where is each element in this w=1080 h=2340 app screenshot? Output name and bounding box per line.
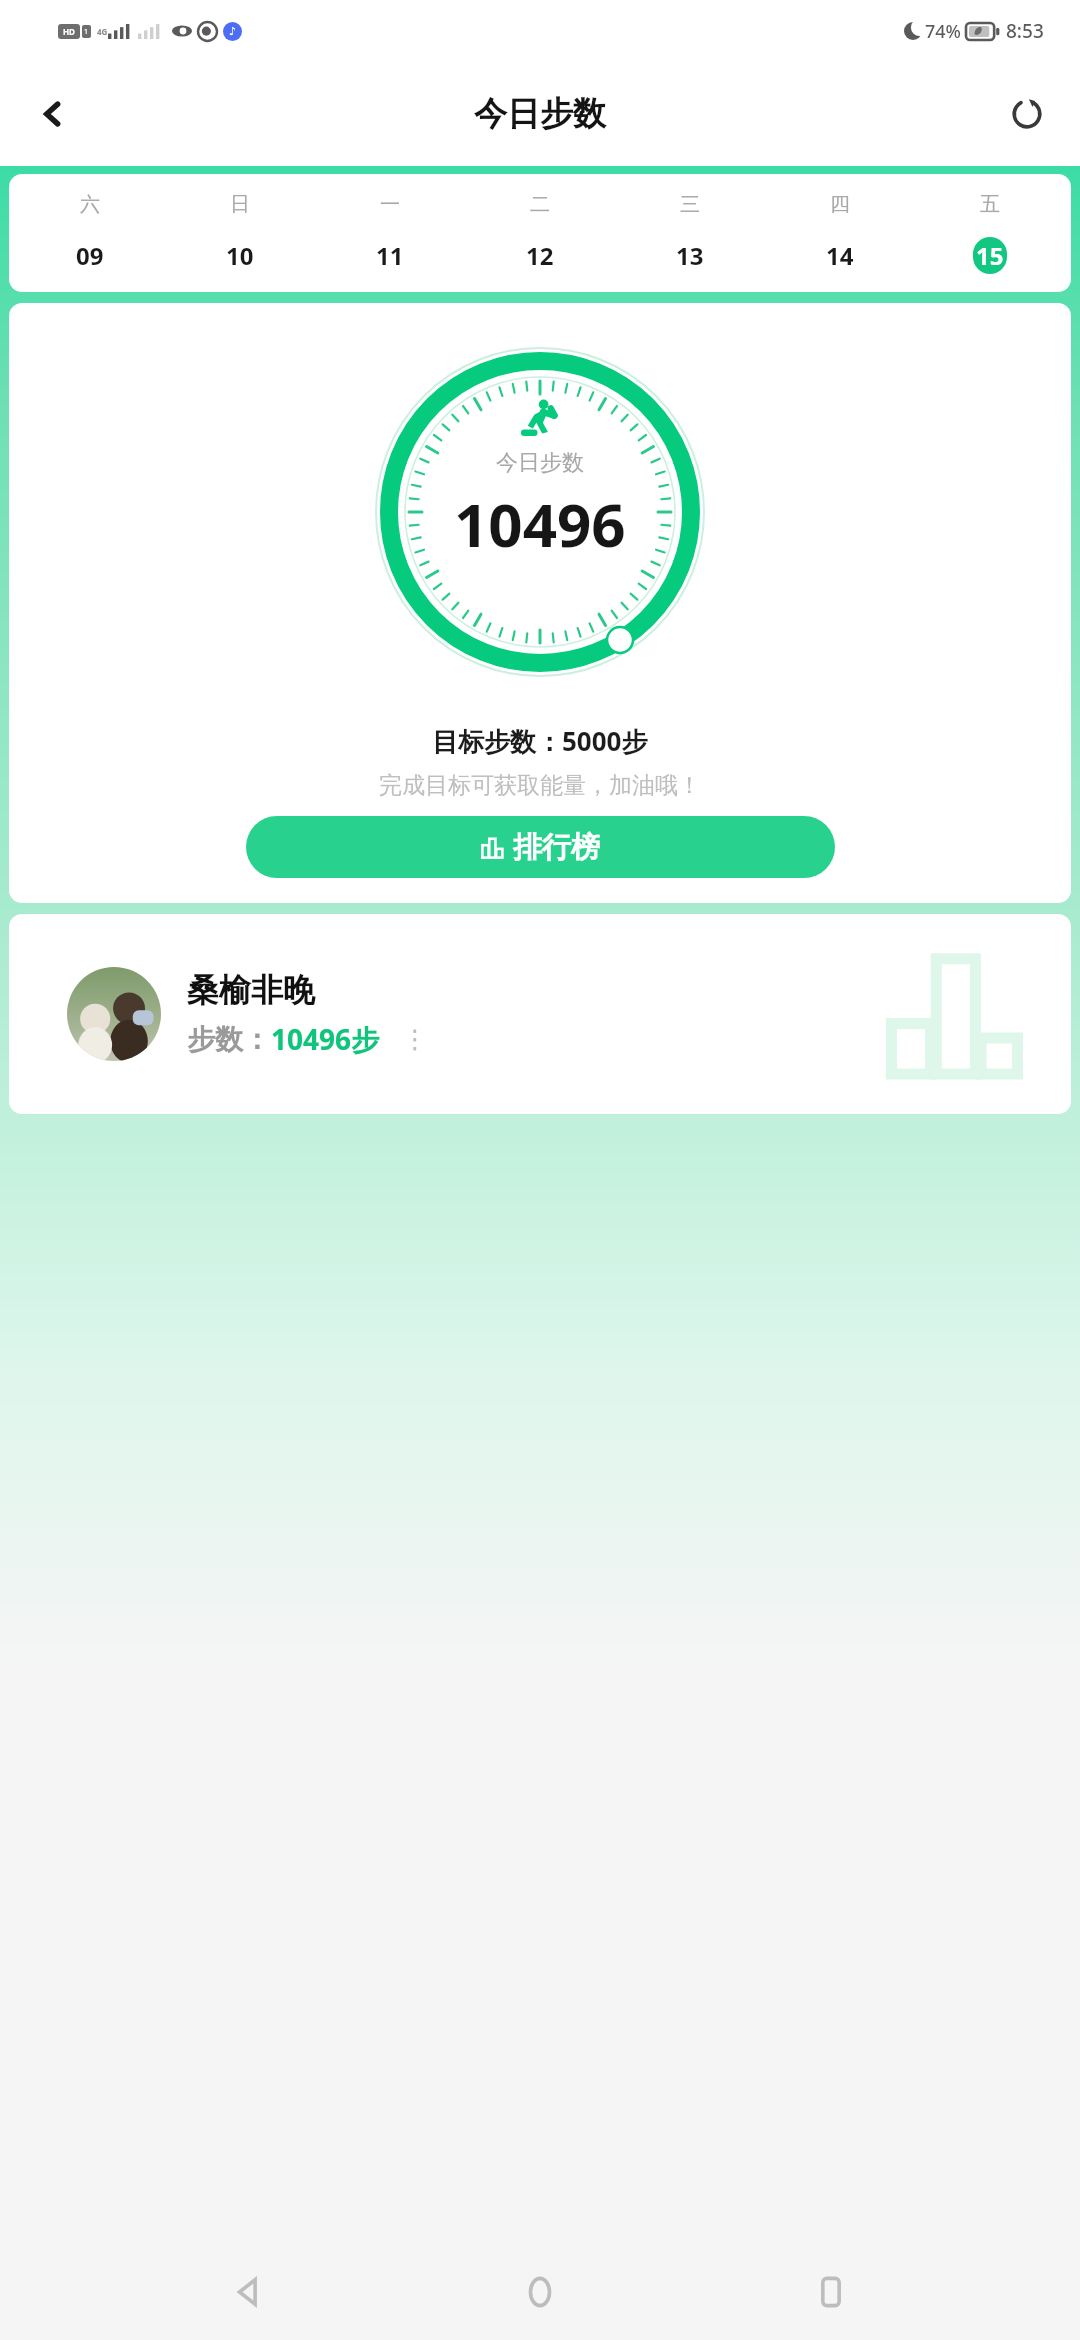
staticText: 桑榆非晚 [187,970,315,1010]
staticText: 六 [80,192,100,217]
button[interactable]: 13 [673,237,707,274]
staticText: 完成目标可获取能量，加油哦！ [379,771,701,800]
staticText: 今日步数 [496,449,584,477]
staticText: 日 [230,192,250,217]
staticText: 今日步数 [474,93,606,135]
staticText: 步数： [187,1022,271,1057]
staticText: 11 [376,239,404,272]
button[interactable]: 桑榆非晚 [9,914,1071,1114]
button[interactable]: 14 [823,237,857,274]
staticText: 一 [380,192,400,217]
staticText: 三 [680,192,700,217]
staticText: HD [63,26,75,37]
button[interactable]: Back [207,2250,291,2334]
staticText: 二 [530,192,550,217]
staticText: 10496步 [271,1020,380,1058]
button[interactable]: 排行榜 [246,816,835,878]
button[interactable]: 12 [523,237,557,274]
staticText: 1 [84,27,89,37]
staticText: 8:53 [1006,18,1044,44]
button[interactable]: 09 [73,237,107,274]
button[interactable]: Back [22,83,84,145]
button[interactable]: Refresh [996,83,1058,145]
staticText: ⋮ [402,1024,428,1054]
staticText: 目标步数：5000步 [432,723,648,759]
staticText: 74% [925,19,961,44]
button[interactable]: 15 [973,237,1007,274]
staticText: 五 [980,192,1000,217]
staticText: 排行榜 [513,829,600,866]
staticText: 13 [676,239,704,272]
staticText: 10 [226,239,254,272]
button[interactable]: Recents [789,2250,873,2334]
staticText: ♪ [229,25,237,38]
button[interactable]: Home [498,2250,582,2334]
staticText: 14 [826,239,854,272]
staticText: 四 [830,192,850,217]
staticText: 10496 [454,483,626,565]
button[interactable]: 10 [223,237,257,274]
button[interactable]: 11 [373,237,407,274]
staticText: 4G [97,26,108,37]
staticText: 15 [976,239,1004,272]
staticText: 12 [526,239,554,272]
staticText: 09 [76,239,104,272]
